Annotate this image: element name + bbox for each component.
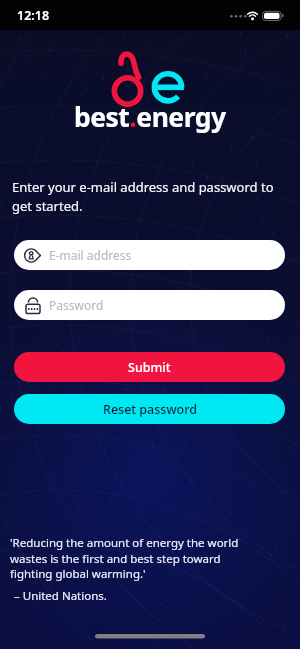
staticText: Enter your e-mail address and password t…: [12, 178, 274, 214]
staticText: 12:18: [17, 7, 50, 24]
staticText: – United Nations.: [14, 588, 107, 604]
button[interactable]: Reset password: [14, 394, 285, 424]
staticText: Password: [49, 297, 104, 313]
staticText: Submit: [128, 359, 171, 376]
button[interactable]: E-mail address: [14, 240, 285, 270]
staticText: best.energy: [74, 99, 226, 135]
staticText: E-mail address: [49, 247, 132, 263]
button[interactable]: Password: [14, 290, 285, 320]
button[interactable]: Submit: [14, 352, 285, 382]
staticText: 'Reducing the amount of energy the world…: [10, 535, 239, 581]
staticText: Reset password: [103, 401, 197, 418]
